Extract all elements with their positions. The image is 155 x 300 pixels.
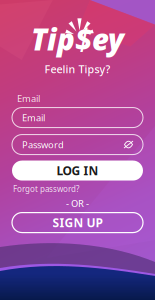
button[interactable]: SIGN UP [12, 213, 143, 233]
staticText: SIGN UP [52, 215, 102, 230]
staticText: Feelin Tipsy? [44, 62, 110, 76]
staticText: - OR - [66, 197, 89, 210]
staticText: Password [22, 138, 64, 151]
staticText: Forgot password? [13, 184, 79, 194]
button[interactable]: LOG IN [12, 161, 143, 181]
staticText: Email [22, 111, 45, 124]
button[interactable]: Forgot password? [13, 184, 79, 194]
button[interactable]: Password [12, 135, 143, 155]
staticText: Email [17, 92, 40, 105]
staticText: LOG IN [56, 163, 98, 178]
button[interactable]: Email [12, 108, 143, 128]
staticText: Tip$ey [31, 19, 124, 58]
